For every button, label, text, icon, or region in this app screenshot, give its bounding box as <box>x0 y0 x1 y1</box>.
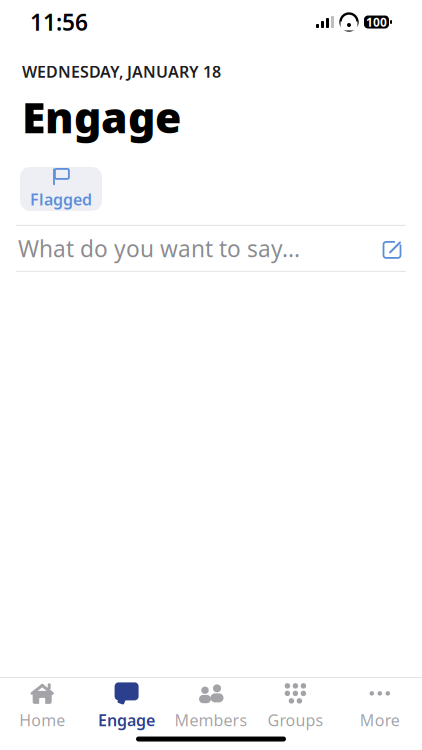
button[interactable]: Engage <box>84 675 169 735</box>
staticText: Engage <box>98 709 155 731</box>
staticText: 100 <box>366 14 387 30</box>
staticText: Flagged <box>30 189 92 210</box>
button[interactable]: What do you want to say... <box>16 226 406 271</box>
staticText: Groups <box>267 709 323 731</box>
staticText: WEDNESDAY, JANUARY 18 <box>22 61 221 82</box>
button[interactable]: Members <box>169 675 253 735</box>
button[interactable]: Home <box>0 675 84 735</box>
staticText: 11:56 <box>30 7 88 37</box>
button[interactable]: More <box>338 675 422 735</box>
staticText: Home <box>19 709 65 731</box>
button[interactable]: Groups <box>253 675 338 735</box>
button[interactable]: Flagged <box>20 167 102 211</box>
staticText: What do you want to say... <box>18 233 300 263</box>
staticText: Members <box>174 709 247 731</box>
staticText: More <box>360 709 400 731</box>
staticText: Engage <box>22 88 181 145</box>
